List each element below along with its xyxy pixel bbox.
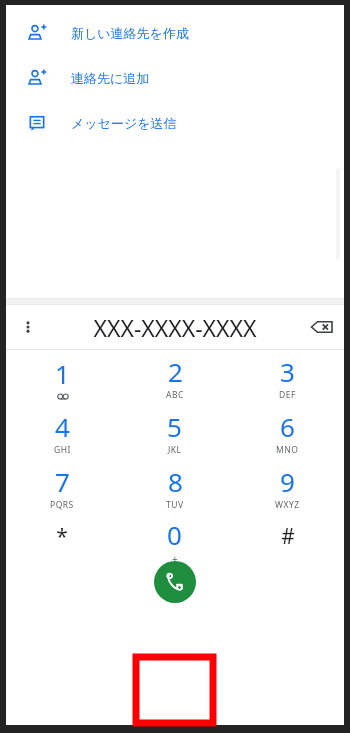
staticText: 3 <box>280 354 295 389</box>
staticText: 新しい連絡先を作成 <box>71 25 189 41</box>
staticText: 4 <box>55 409 70 444</box>
button[interactable]: Call <box>154 561 196 603</box>
staticText: DEF <box>279 389 296 401</box>
staticText: PQRS <box>50 499 74 511</box>
staticText: 8 <box>168 464 183 499</box>
button[interactable]: 4 <box>6 405 118 460</box>
staticText: 連絡先に追加 <box>71 70 150 86</box>
button[interactable]: 8 <box>118 460 231 515</box>
staticText: 9 <box>280 464 295 499</box>
staticText: 2 <box>168 354 183 389</box>
staticText: MNO <box>276 444 299 456</box>
button[interactable]: 1 <box>6 350 118 405</box>
staticText: * <box>56 522 68 551</box>
button[interactable]: 3 <box>231 350 344 405</box>
staticText: 7 <box>55 464 70 499</box>
staticText: 6 <box>280 409 295 444</box>
staticText: XXX-XXXX-XXXX <box>93 312 257 343</box>
button[interactable]: 0 <box>118 515 231 567</box>
button[interactable]: メッセージを送信 <box>6 105 344 141</box>
staticText: TUV <box>166 499 184 511</box>
staticText: JKL <box>168 444 182 456</box>
staticText: 5 <box>167 409 182 444</box>
button[interactable]: More options <box>6 305 50 349</box>
staticText: 0 <box>167 517 182 552</box>
staticText: GHI <box>54 444 71 456</box>
button[interactable]: * <box>6 515 118 567</box>
button[interactable]: # <box>231 515 344 567</box>
button[interactable]: 連絡先に追加 <box>6 60 344 96</box>
staticText: ABC <box>166 389 184 401</box>
button[interactable]: 5 <box>118 405 231 460</box>
staticText: 1 <box>55 356 70 391</box>
staticText: メッセージを送信 <box>71 115 177 131</box>
staticText: # <box>281 522 295 551</box>
button[interactable]: 6 <box>231 405 344 460</box>
button[interactable]: 9 <box>231 460 344 515</box>
button[interactable]: 2 <box>118 350 231 405</box>
button[interactable]: Backspace <box>300 305 344 349</box>
button[interactable]: 新しい連絡先を作成 <box>6 15 344 51</box>
staticText: WXYZ <box>275 499 300 511</box>
button[interactable]: 7 <box>6 460 118 515</box>
staticText: + <box>172 552 178 566</box>
